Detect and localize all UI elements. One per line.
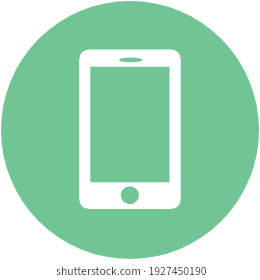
- button[interactable]: Smartphone: [1, 1, 259, 259]
- staticText: shutterstock.com · 1927450190: [56, 263, 207, 280]
